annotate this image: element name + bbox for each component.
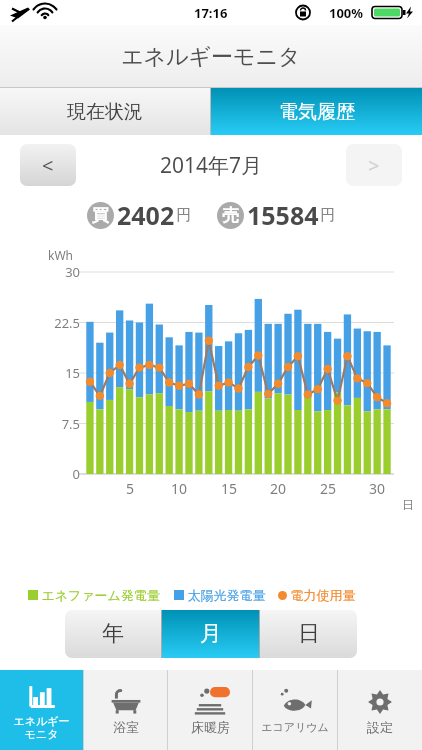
staticText: 15 xyxy=(215,479,243,498)
staticText: 30 xyxy=(363,479,391,498)
button[interactable]: 月 xyxy=(162,610,259,658)
staticText: 浴室 xyxy=(113,719,139,735)
staticText: 年 xyxy=(102,620,124,648)
staticText: 100% xyxy=(329,4,364,22)
staticText: 25 xyxy=(314,479,342,498)
staticText: エネルギーモニタ xyxy=(121,43,301,71)
staticText: > xyxy=(368,152,380,179)
staticText: 2402 xyxy=(117,198,175,232)
staticText: 電力使用量 xyxy=(287,586,356,604)
staticText: 17:16 xyxy=(194,4,228,22)
staticText: 買 xyxy=(92,205,109,226)
button[interactable]: 次の月 xyxy=(346,144,402,186)
staticText: エネルギー モニタ xyxy=(13,714,70,741)
staticText: 30 xyxy=(34,263,80,281)
button[interactable]: 年 xyxy=(65,610,161,658)
button[interactable]: 現在状況 xyxy=(0,88,210,135)
staticText: 日 xyxy=(298,620,320,648)
staticText: 22.5 xyxy=(34,314,80,332)
button[interactable]: 電気履歴 xyxy=(211,88,422,135)
button[interactable]: 前の月 xyxy=(20,144,76,186)
staticText: 15584 xyxy=(247,198,319,232)
staticText: 売 xyxy=(222,205,239,226)
staticText: 月 xyxy=(200,620,222,648)
button[interactable]: 浴室 xyxy=(84,670,167,750)
staticText: 日 xyxy=(402,497,414,512)
staticText: エコアリウム xyxy=(261,720,329,734)
staticText: 7.5 xyxy=(34,415,80,433)
staticText: 0 xyxy=(34,465,80,483)
staticText: 電気履歴 xyxy=(279,100,355,124)
button[interactable]: エコアリウム xyxy=(253,670,337,750)
staticText: 太陽光発電量 xyxy=(184,586,266,604)
staticText: 設定 xyxy=(367,719,393,735)
staticText: エネファーム発電量 xyxy=(38,586,160,604)
button[interactable]: 床暖房 xyxy=(168,670,252,750)
staticText: 現在状況 xyxy=(67,100,143,124)
staticText: 5 xyxy=(116,479,144,498)
staticText: < xyxy=(42,152,54,179)
staticText: 円 xyxy=(176,206,191,225)
button[interactable]: エネルギー モニタ xyxy=(0,670,83,750)
button[interactable]: 設定 xyxy=(338,670,422,750)
button[interactable]: 日 xyxy=(260,610,357,658)
staticText: 円 xyxy=(320,206,335,225)
staticText: 床暖房 xyxy=(191,719,230,735)
staticText: 15 xyxy=(34,364,80,382)
staticText: 2014年7月 xyxy=(160,151,263,180)
staticText: 20 xyxy=(264,479,292,498)
staticText: 10 xyxy=(165,479,193,498)
staticText: kWh xyxy=(48,247,73,263)
